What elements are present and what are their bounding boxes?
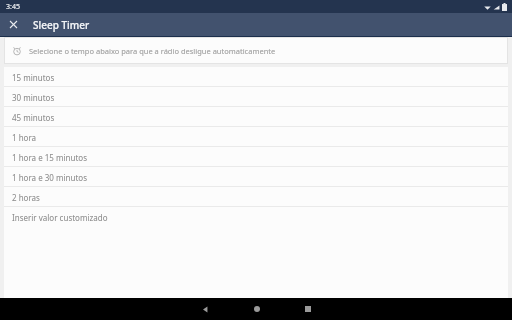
button[interactable]: Close	[5, 16, 22, 33]
button[interactable]: Inserir valor customizado	[4, 207, 508, 227]
button[interactable]: 2 horas	[4, 187, 508, 207]
staticText: 1 hora e 30 minutos	[12, 172, 87, 183]
staticText: Sleep Timer	[33, 18, 90, 32]
staticText: 15 minutos	[12, 72, 55, 83]
button[interactable]: 15 minutos	[4, 67, 508, 87]
button[interactable]: Recents	[282, 298, 333, 320]
button[interactable]: 45 minutos	[4, 107, 508, 127]
staticText: 1 hora	[12, 132, 37, 143]
staticText: 30 minutos	[12, 92, 55, 103]
button[interactable]: 30 minutos	[4, 87, 508, 107]
staticText: 3:45	[6, 2, 20, 12]
staticText: Inserir valor customizado	[12, 212, 108, 223]
staticText: 1 hora e 15 minutos	[12, 152, 87, 163]
staticText: 45 minutos	[12, 112, 55, 123]
staticText: 2 horas	[12, 192, 40, 203]
staticText: Selecione o tempo abaixo para que a rádi…	[29, 46, 276, 56]
button[interactable]: Selecione o tempo abaixo para que a rádi…	[4, 37, 508, 64]
button[interactable]: Back	[180, 298, 231, 320]
button[interactable]: 1 hora e 30 minutos	[4, 167, 508, 187]
button[interactable]: 1 hora e 15 minutos	[4, 147, 508, 167]
button[interactable]: 1 hora	[4, 127, 508, 147]
button[interactable]: Home	[231, 298, 282, 320]
